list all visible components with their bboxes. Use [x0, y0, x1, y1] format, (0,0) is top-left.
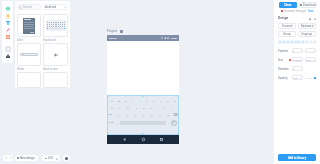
staticText: 25% — [48, 156, 54, 160]
staticText: Position — [278, 49, 289, 53]
staticText: ?123 — [109, 121, 114, 124]
button[interactable]: Backward — [298, 23, 316, 29]
button[interactable]: x — [292, 48, 303, 53]
staticText: 12:30 — [171, 37, 177, 40]
staticText: . — [168, 121, 169, 125]
button[interactable] — [17, 14, 41, 37]
staticText: x — [293, 49, 295, 52]
button[interactable]: Forward — [278, 23, 296, 29]
staticText: k — [164, 106, 166, 109]
staticText: Ungroup — [301, 32, 313, 36]
button[interactable]: Grid — [4, 33, 11, 40]
staticText: New design — [20, 156, 35, 160]
button[interactable]: Ungroup — [298, 31, 316, 37]
staticText: n — [159, 113, 161, 116]
staticText: Back arrow — [43, 67, 68, 71]
staticText: Rotation — [278, 67, 289, 71]
button[interactable]: Group — [278, 31, 296, 37]
staticText: r — [132, 99, 134, 102]
staticText: s — [119, 106, 121, 109]
button[interactable]: Search — [17, 4, 41, 10]
staticText: t — [139, 99, 140, 102]
staticText: 100.0% — [293, 58, 302, 61]
button[interactable]: Distribute — [305, 40, 308, 43]
staticText: m — [167, 113, 170, 116]
button[interactable]: Y — [305, 48, 316, 53]
button[interactable]: Undo — [3, 155, 8, 161]
staticText: Search — [23, 5, 33, 9]
staticText: Alert — [17, 38, 41, 42]
button[interactable]: Shapes — [4, 12, 11, 19]
staticText: Forward — [282, 24, 293, 28]
button[interactable]: Help — [63, 155, 69, 161]
staticText: Project — [107, 29, 118, 33]
staticText: Backward — [301, 24, 314, 28]
staticText: Keyboard — [43, 38, 68, 42]
staticText: Save — [308, 9, 314, 13]
staticText: Y — [306, 49, 308, 52]
staticText: Clone — [284, 3, 292, 7]
staticText: i — [160, 99, 161, 102]
staticText: w — [118, 99, 120, 102]
button[interactable]: Shield — [4, 5, 11, 12]
staticText: 0 — [293, 67, 295, 70]
button[interactable] — [17, 43, 41, 66]
button[interactable]: Lock — [308, 17, 311, 20]
staticText: v — [143, 113, 145, 116]
button[interactable]: Pen — [4, 26, 11, 33]
button[interactable]: Text — [4, 19, 11, 26]
button[interactable]: Visibility — [313, 17, 316, 20]
button[interactable]: Align — [278, 40, 281, 43]
other: Recents — [160, 138, 163, 141]
button[interactable]: Download — [299, 2, 317, 8]
button[interactable]: Align — [290, 40, 293, 43]
staticText: Size — [278, 58, 289, 62]
other: Back — [123, 138, 126, 141]
button[interactable]: Image — [4, 45, 11, 52]
staticText: Slider — [17, 67, 41, 71]
button[interactable]: 100.0% — [292, 57, 303, 62]
button[interactable] — [17, 72, 41, 88]
button[interactable] — [43, 72, 68, 88]
staticText: 100 — [293, 76, 298, 79]
staticText: o — [167, 99, 169, 102]
staticText: Add to Library — [288, 156, 307, 160]
button[interactable]: Align — [297, 40, 300, 43]
staticText: y — [146, 99, 148, 102]
button[interactable]: Align — [282, 40, 285, 43]
other: Home — [142, 138, 145, 141]
button[interactable]: Android — [43, 4, 68, 10]
staticText: Opacity — [278, 76, 289, 80]
button[interactable]: Zoom out — [44, 157, 47, 160]
staticText: Sun 08 — [109, 37, 117, 40]
button[interactable]: Upload — [4, 52, 11, 59]
staticText: l — [171, 106, 172, 109]
button[interactable]: Align — [294, 40, 297, 43]
staticText: Unsaved changes — [284, 9, 307, 13]
button[interactable] — [43, 14, 68, 37]
button[interactable]: Align — [301, 40, 304, 43]
button[interactable]: Redo — [8, 155, 13, 161]
button[interactable]: Add to Library — [278, 154, 316, 161]
staticText: z — [118, 113, 120, 116]
button[interactable]: New design — [17, 155, 36, 161]
button[interactable] — [43, 43, 68, 66]
staticText: a — [111, 106, 113, 109]
staticText: h — [150, 106, 152, 109]
button[interactable]: Clone — [279, 2, 297, 8]
staticText: Download — [303, 3, 316, 7]
button[interactable]: Distribute — [309, 40, 312, 43]
staticText: q — [111, 99, 113, 102]
button[interactable]: 0 — [292, 66, 303, 71]
button[interactable]: 87.0 — [305, 57, 316, 62]
staticText: Android — [45, 5, 57, 9]
staticText: Group — [283, 32, 291, 36]
staticText: b — [151, 113, 153, 116]
button[interactable]: Align — [286, 40, 289, 43]
button[interactable]: Distribute — [313, 40, 316, 43]
button[interactable]: Zoom in — [55, 157, 58, 160]
staticText: e — [125, 99, 127, 102]
button[interactable]: 100 — [292, 75, 303, 80]
staticText: f — [136, 106, 137, 109]
staticText: p — [174, 99, 176, 102]
